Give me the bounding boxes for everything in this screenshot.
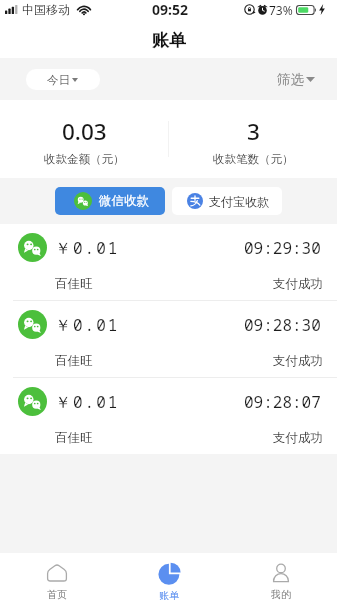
button[interactable]: 微信收款: [55, 187, 165, 215]
button[interactable]: ￥0.01: [0, 224, 337, 301]
other: 首页: [47, 563, 67, 583]
staticText: ￥0.01: [55, 391, 120, 413]
button[interactable]: 筛选: [265, 62, 337, 97]
other: 账单: [159, 563, 180, 584]
staticText: 09:28:07: [244, 391, 321, 413]
staticText: 收款笔数（元）: [213, 152, 294, 166]
staticText: 今日: [47, 73, 70, 87]
staticText: 账单: [159, 589, 179, 600]
staticText: 中国移动: [22, 2, 70, 17]
button[interactable]: 首页: [0, 553, 113, 600]
staticText: 首页: [47, 588, 67, 600]
staticText: 73%: [269, 2, 293, 18]
staticText: ￥0.01: [55, 314, 120, 336]
staticText: ￥0.01: [55, 237, 120, 259]
staticText: 支付成功: [273, 276, 323, 292]
button[interactable]: 账单: [113, 553, 225, 600]
staticText: 收款金额（元）: [44, 152, 125, 166]
staticText: 百佳旺: [55, 276, 93, 292]
staticText: 百佳旺: [55, 353, 93, 369]
staticText: 0.03: [62, 116, 107, 147]
button[interactable]: 今日: [26, 69, 100, 90]
staticText: 09:52: [152, 0, 188, 19]
staticText: 3: [247, 116, 260, 147]
staticText: 筛选: [277, 71, 304, 88]
staticText: 支付成功: [273, 430, 323, 446]
button[interactable]: 我的: [225, 553, 337, 600]
staticText: 账单: [152, 30, 186, 51]
staticText: 支付宝收款: [209, 194, 269, 209]
other: 我的: [271, 563, 291, 583]
button[interactable]: ￥0.01: [0, 378, 337, 454]
staticText: 09:29:30: [244, 237, 321, 259]
staticText: 百佳旺: [55, 430, 93, 446]
staticText: 微信收款: [99, 193, 149, 209]
button[interactable]: 支付宝收款: [172, 187, 282, 215]
button[interactable]: ￥0.01: [0, 301, 337, 378]
staticText: 我的: [271, 588, 291, 600]
staticText: 09:28:30: [244, 314, 321, 336]
staticText: 支付成功: [273, 353, 323, 369]
